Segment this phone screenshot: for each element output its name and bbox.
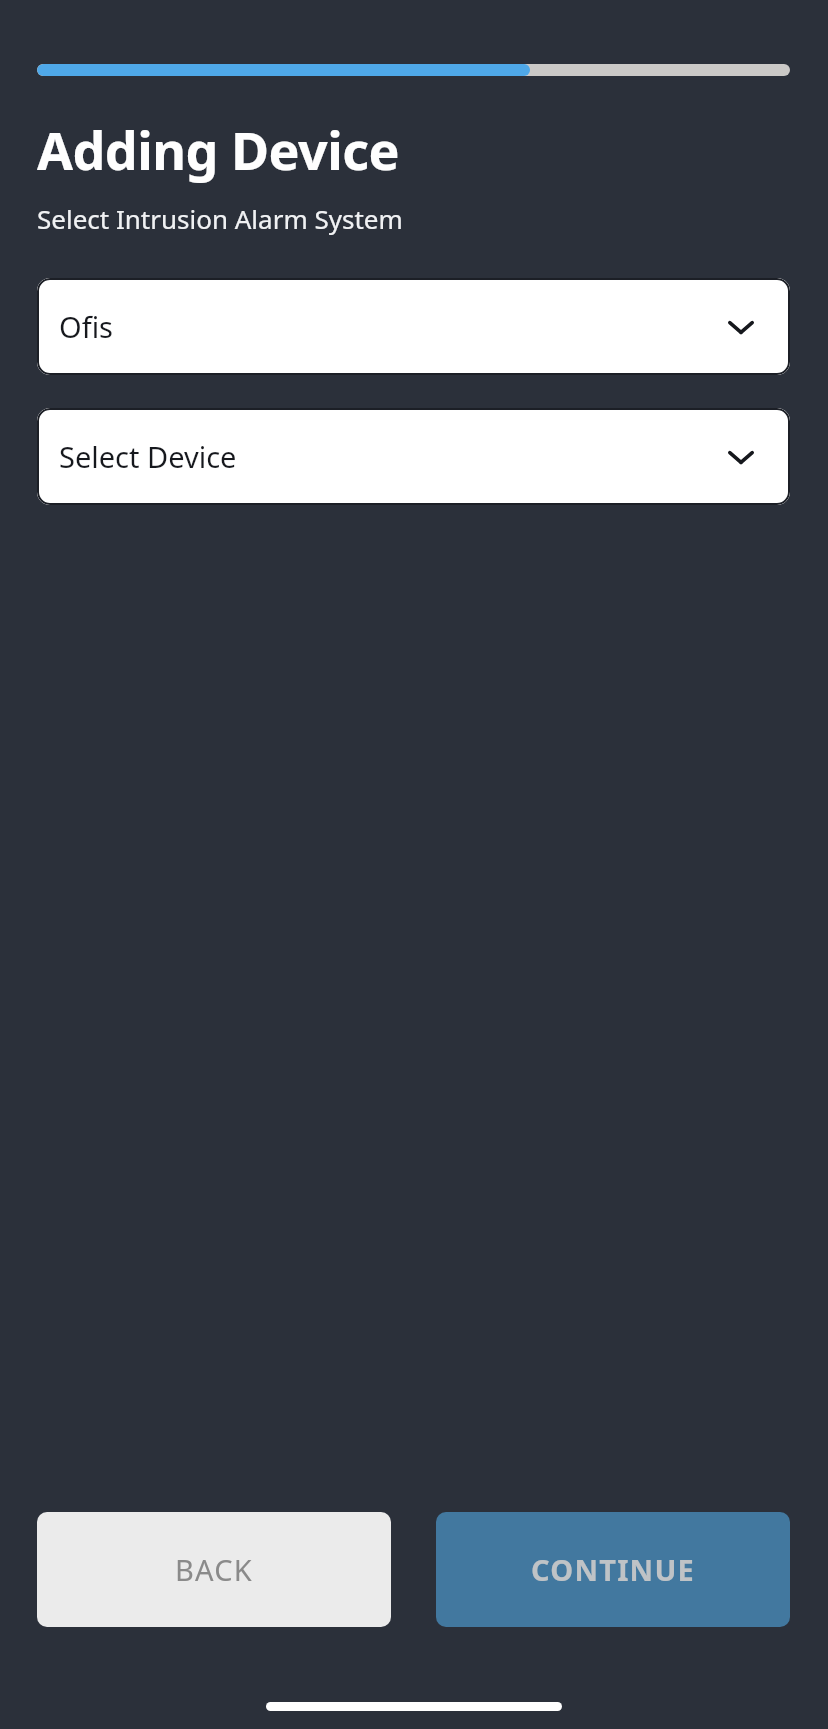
staticText: Adding Device (37, 114, 400, 185)
staticText: Select Intrusion Alarm System (37, 201, 403, 236)
staticText: Select Device (59, 437, 237, 476)
staticText: Ofis (59, 307, 113, 346)
button[interactable]: BACK (37, 1512, 391, 1627)
staticText: BACK (175, 1550, 253, 1589)
staticText: CONTINUE (531, 1550, 695, 1589)
button[interactable]: Select location Ofis (37, 278, 790, 375)
button[interactable]: Select Device (37, 408, 790, 505)
button[interactable]: CONTINUE (436, 1512, 790, 1627)
